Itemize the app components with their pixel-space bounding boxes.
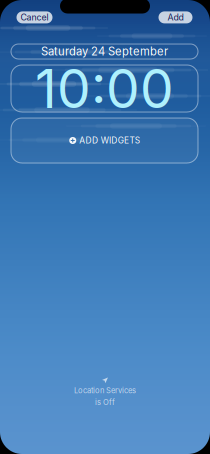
staticText: ADD WIDGETS <box>79 135 140 146</box>
staticText: 10:00 <box>35 56 174 121</box>
button[interactable]: ADD WIDGETS <box>11 118 198 163</box>
staticText: Add <box>167 12 183 23</box>
button[interactable]: 10:00 <box>11 65 198 112</box>
staticText: Saturday 24 September <box>41 45 168 58</box>
button[interactable]: Cancel <box>16 11 52 23</box>
staticText: Cancel <box>20 12 48 23</box>
staticText: Location Services <box>74 386 136 395</box>
button[interactable]: Saturday 24 September <box>11 44 198 59</box>
staticText: is Off <box>95 398 115 407</box>
button[interactable]: Add <box>158 11 192 23</box>
